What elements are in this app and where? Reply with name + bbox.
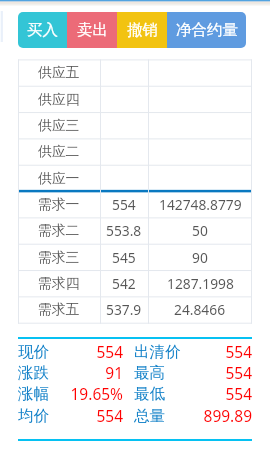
button[interactable]: 24.8466: [148, 297, 252, 322]
staticText: 554: [186, 341, 252, 362]
staticText: 涨幅: [18, 384, 66, 404]
button[interactable]: [100, 166, 148, 191]
button[interactable]: 涨幅: [18, 383, 123, 404]
staticText: 撤销: [127, 20, 158, 40]
staticText: 供应二: [38, 143, 80, 160]
staticText: 需求五: [38, 301, 80, 318]
button[interactable]: 553.8: [100, 218, 148, 243]
button[interactable]: 净合约量: [167, 12, 246, 48]
button[interactable]: 供应四: [18, 87, 100, 112]
button[interactable]: 需求四: [18, 271, 100, 296]
button[interactable]: 出清价: [134, 341, 252, 362]
button[interactable]: 542: [100, 271, 148, 296]
button[interactable]: 50: [148, 218, 252, 243]
staticText: 554: [66, 405, 123, 426]
staticText: 供应四: [38, 91, 80, 108]
staticText: 553.8: [106, 221, 142, 240]
staticText: 均价: [18, 406, 66, 426]
button[interactable]: 需求五: [18, 297, 100, 322]
button[interactable]: [148, 113, 252, 138]
button[interactable]: 需求三: [18, 245, 100, 270]
staticText: 涨跌: [18, 363, 66, 383]
button[interactable]: [100, 113, 148, 138]
staticText: 买入: [27, 20, 58, 40]
button[interactable]: 卖出: [67, 12, 117, 48]
staticText: 需求二: [38, 222, 80, 239]
button[interactable]: [148, 139, 252, 164]
staticText: 90: [192, 248, 208, 267]
staticText: 需求四: [38, 275, 80, 292]
button[interactable]: [100, 60, 148, 85]
button[interactable]: 90: [148, 245, 252, 270]
staticText: 50: [192, 221, 208, 240]
staticText: 需求三: [38, 249, 80, 266]
staticText: 537.9: [106, 300, 142, 319]
button[interactable]: 1287.1998: [148, 271, 252, 296]
button[interactable]: 买入: [18, 12, 67, 48]
staticText: 总量: [134, 406, 186, 426]
staticText: 出清价: [134, 342, 186, 362]
button[interactable]: 供应三: [18, 113, 100, 138]
button[interactable]: 供应二: [18, 139, 100, 164]
staticText: 19.65%: [66, 383, 123, 404]
staticText: 554: [186, 383, 252, 404]
staticText: 最高: [134, 363, 186, 383]
button[interactable]: 总量: [134, 405, 252, 426]
staticText: 554: [112, 195, 136, 214]
staticText: 卖出: [77, 20, 108, 40]
staticText: 现价: [18, 342, 66, 362]
staticText: 542: [112, 274, 136, 293]
button[interactable]: [148, 60, 252, 85]
staticText: 142748.8779: [159, 195, 242, 214]
button[interactable]: 142748.8779: [148, 192, 252, 217]
staticText: 供应一: [38, 170, 80, 187]
button[interactable]: 537.9: [100, 297, 148, 322]
button[interactable]: 均价: [18, 405, 123, 426]
button[interactable]: 涨跌: [18, 362, 123, 383]
staticText: 1287.1998: [167, 274, 234, 293]
staticText: 91: [66, 362, 123, 383]
staticText: 供应五: [38, 64, 80, 81]
staticText: 24.8466: [174, 300, 226, 319]
staticText: 554: [186, 362, 252, 383]
button[interactable]: 545: [100, 245, 148, 270]
staticText: 供应三: [38, 117, 80, 134]
button[interactable]: 554: [100, 192, 148, 217]
staticText: 净合约量: [176, 20, 238, 40]
button[interactable]: [148, 166, 252, 191]
button[interactable]: 现价: [18, 341, 123, 362]
button[interactable]: 撤销: [117, 12, 167, 48]
button[interactable]: [100, 87, 148, 112]
staticText: 最低: [134, 384, 186, 404]
button[interactable]: 需求二: [18, 218, 100, 243]
button[interactable]: 供应一: [18, 166, 100, 191]
button[interactable]: [148, 87, 252, 112]
button[interactable]: 需求一: [18, 192, 100, 217]
staticText: 545: [112, 248, 136, 267]
button[interactable]: 供应五: [18, 60, 100, 85]
staticText: 需求一: [38, 196, 80, 213]
staticText: 554: [66, 341, 123, 362]
button[interactable]: 最高: [134, 362, 252, 383]
button[interactable]: [100, 139, 148, 164]
staticText: 899.89: [186, 405, 252, 426]
button[interactable]: 最低: [134, 383, 252, 404]
